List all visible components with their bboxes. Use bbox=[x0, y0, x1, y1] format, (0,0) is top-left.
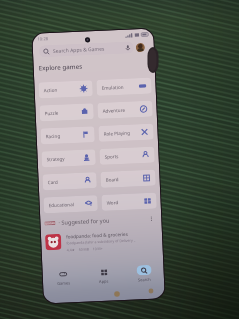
staticText: Card bbox=[47, 179, 59, 185]
staticText: Board bbox=[105, 176, 119, 183]
staticText: 10:28 bbox=[37, 36, 49, 43]
staticText: Emulation bbox=[101, 84, 124, 91]
button[interactable]: Puzzle bbox=[39, 103, 94, 121]
staticText: Role Playing bbox=[103, 130, 131, 137]
button[interactable]: Apps bbox=[83, 266, 124, 285]
staticText: 10 M+ bbox=[92, 246, 104, 251]
button[interactable]: Games bbox=[42, 268, 84, 287]
staticText: Sponsored bbox=[44, 221, 56, 225]
staticText: Puzzle bbox=[44, 110, 59, 116]
button[interactable]: More options bbox=[147, 215, 155, 223]
staticText: · Suggested for you bbox=[58, 216, 111, 227]
staticText: Racing bbox=[45, 133, 61, 139]
button[interactable]: Word bbox=[101, 192, 157, 211]
button[interactable]: Action bbox=[38, 80, 93, 98]
staticText: Search bbox=[138, 277, 151, 282]
staticText: Games bbox=[57, 280, 71, 286]
button[interactable]: Account bbox=[136, 43, 145, 52]
staticText: 50 MB bbox=[78, 246, 90, 252]
staticText: Sports bbox=[104, 153, 119, 160]
button[interactable]: Emulation bbox=[96, 78, 152, 96]
button[interactable]: Racing bbox=[40, 126, 95, 144]
button[interactable]: Strategy bbox=[41, 149, 96, 167]
staticText: Action bbox=[43, 87, 58, 93]
staticText: Strategy bbox=[46, 155, 65, 162]
button[interactable]: Role Playing bbox=[98, 124, 154, 142]
staticText: Explore games bbox=[38, 62, 83, 71]
staticText: foodpanda (lahir a subsidiary of Deliver… bbox=[66, 237, 136, 245]
button[interactable]: Search Apps & Games bbox=[39, 41, 134, 57]
button[interactable]: Card bbox=[42, 172, 97, 190]
button[interactable]: Search bbox=[123, 264, 164, 283]
button[interactable]: Educational bbox=[43, 195, 98, 213]
staticText: Search Apps & Games bbox=[53, 46, 105, 55]
staticText: foodpanda: food & groceries bbox=[66, 231, 128, 239]
staticText: Adventure bbox=[102, 107, 126, 114]
staticText: Word bbox=[106, 199, 119, 206]
staticText: Educational bbox=[48, 201, 75, 208]
button[interactable]: Sports bbox=[99, 147, 155, 165]
staticText: Apps bbox=[99, 279, 109, 284]
button[interactable]: Board bbox=[100, 169, 156, 188]
staticText: 4.4★ bbox=[66, 247, 76, 252]
button[interactable]: Adventure bbox=[97, 101, 153, 119]
button[interactable]: foodpanda: food & groceries bbox=[45, 230, 157, 253]
